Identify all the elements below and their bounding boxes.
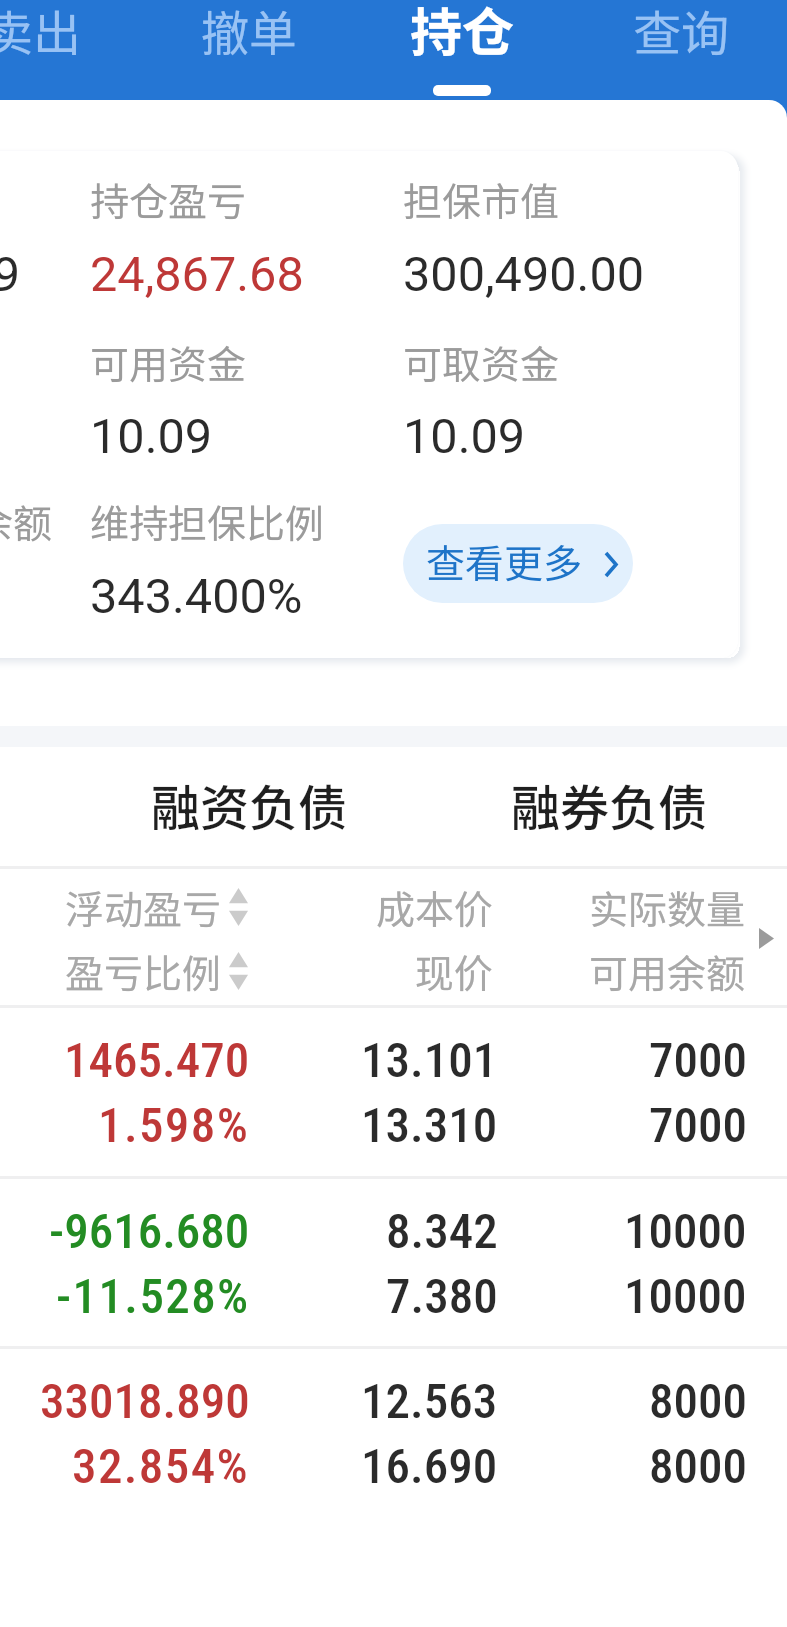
staticText: 盈亏比例 (65, 943, 222, 999)
button[interactable] (127, 750, 367, 864)
button[interactable]: 更多列 (746, 918, 786, 958)
staticText: 可取资金 (403, 334, 560, 390)
button[interactable] (0, 1177, 787, 1347)
button[interactable] (147, 0, 347, 99)
button[interactable] (0, 1347, 787, 1517)
button[interactable] (0, 151, 738, 658)
staticText: 7.380 (386, 1268, 498, 1325)
staticText: 8000 (649, 1373, 747, 1430)
button[interactable] (0, 1006, 787, 1176)
staticText: 查询 (633, 0, 730, 65)
staticText: 卖出 (0, 0, 82, 65)
staticText: 浮动盈亏 (65, 879, 222, 935)
staticText: 10.09 (403, 408, 526, 465)
staticText: 维持担保比例 (90, 493, 325, 549)
staticText: 可用资金 (90, 334, 247, 390)
staticText: 24,867.68 (90, 246, 304, 303)
staticText: 8000 (649, 1438, 747, 1495)
staticText: 8.342 (386, 1203, 498, 1260)
staticText: 持仓盈亏 (90, 171, 247, 227)
staticText: 1465.470 (64, 1032, 250, 1089)
staticText: 7000 (649, 1032, 747, 1089)
staticText: 300,490.00 (403, 246, 645, 303)
staticText: 融资余额 (0, 493, 53, 549)
staticText: 融券负债 (511, 769, 708, 840)
staticText: 16.690 (361, 1438, 498, 1495)
staticText: 12.563 (361, 1373, 498, 1430)
button[interactable] (579, 0, 779, 99)
staticText: 343.400% (90, 568, 303, 625)
staticText: 融资负债 (151, 769, 348, 840)
staticText: 300,450.09 (0, 246, 21, 303)
staticText: 32.854% (72, 1438, 250, 1495)
staticText: 可用余额 (589, 943, 746, 999)
staticText: 13.101 (361, 1032, 498, 1089)
staticText: -11.528% (56, 1268, 250, 1325)
button[interactable] (487, 750, 727, 864)
staticText: -9616.680 (49, 1203, 250, 1260)
button[interactable] (403, 524, 633, 603)
staticText: 持仓 (410, 0, 515, 66)
staticText: 成本价 (376, 879, 494, 935)
staticText: 实际数量 (589, 879, 746, 935)
staticText: 撤单 (201, 0, 298, 65)
staticText: 10.09 (90, 408, 213, 465)
staticText: 查看更多 (426, 533, 583, 589)
staticText: 10000 (624, 1203, 747, 1260)
staticText: 现价 (415, 943, 494, 999)
button[interactable] (361, 0, 561, 99)
staticText: 7000 (649, 1097, 747, 1154)
button[interactable] (0, 0, 131, 99)
staticText: 担保市值 (403, 171, 560, 227)
staticText: 13.310 (361, 1097, 498, 1154)
staticText: 33018.890 (40, 1373, 250, 1430)
staticText: 10000 (624, 1268, 747, 1325)
staticText: 1.598% (98, 1097, 250, 1154)
